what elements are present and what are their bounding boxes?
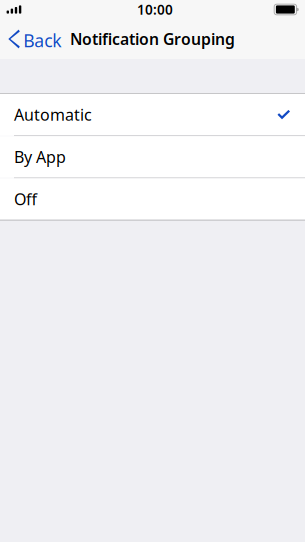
staticText: Automatic — [14, 104, 92, 125]
staticText: 10:00 — [137, 0, 173, 19]
button[interactable]: Off — [0, 178, 305, 220]
button[interactable]: By App — [0, 136, 305, 177]
staticText: Off — [14, 188, 37, 210]
staticText: Back — [23, 28, 61, 52]
button[interactable]: Automatic — [0, 94, 305, 135]
staticText: By App — [14, 146, 66, 168]
button[interactable]: Back — [0, 21, 69, 56]
staticText: Notification Grouping — [70, 28, 235, 50]
